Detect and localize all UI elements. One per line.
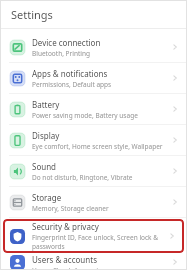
other: Open Users & accounts bbox=[169, 256, 181, 268]
other: Open Battery bbox=[169, 103, 181, 115]
other: Open Display bbox=[169, 134, 181, 146]
staticText: Security & privacy bbox=[32, 221, 99, 232]
staticText: Users & accounts bbox=[32, 254, 97, 265]
other: Open Storage bbox=[169, 196, 181, 208]
staticText: Fingerprint ID, Face unlock, Screen lock… bbox=[32, 233, 162, 251]
other: Open Device connection bbox=[169, 41, 181, 53]
staticText: Display bbox=[32, 130, 60, 141]
other: Open Security & privacy bbox=[166, 230, 178, 242]
staticText: Users, Cloud, Accounts bbox=[32, 266, 102, 270]
staticText: Sound bbox=[32, 161, 57, 172]
staticText: Apps & notifications bbox=[32, 68, 108, 79]
button[interactable]: Apps & notifications bbox=[0, 63, 187, 93]
staticText: Permissions, Default apps bbox=[32, 80, 112, 89]
other: Open Sound bbox=[169, 165, 181, 177]
button[interactable]: Display bbox=[0, 125, 187, 155]
button[interactable]: Sound bbox=[0, 156, 187, 186]
other: Open Apps & notifications bbox=[169, 72, 181, 84]
button[interactable]: Device connection bbox=[0, 32, 187, 62]
staticText: Memory, Storage cleaner bbox=[32, 204, 109, 213]
staticText: Do not disturb, Ringtone, Vibrate bbox=[32, 173, 133, 182]
staticText: Bluetooth, Printing bbox=[32, 49, 90, 58]
staticText: Device connection bbox=[32, 37, 101, 48]
button[interactable]: Battery bbox=[0, 94, 187, 124]
button[interactable]: Security & privacy bbox=[3, 219, 184, 253]
staticText: Settings bbox=[11, 7, 53, 22]
staticText: Power saving mode, Battery usage bbox=[32, 111, 138, 120]
button[interactable]: Users & accounts bbox=[0, 254, 187, 270]
staticText: Storage bbox=[32, 192, 62, 203]
staticText: Eye comfort, Home screen style, Wallpape… bbox=[32, 142, 163, 151]
button[interactable]: Storage bbox=[0, 187, 187, 217]
staticText: Battery bbox=[32, 99, 60, 110]
